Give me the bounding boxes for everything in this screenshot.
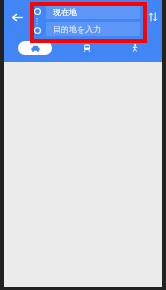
- button[interactable]: Swap origin and destination: [144, 0, 162, 34]
- button[interactable]: 現在地: [46, 5, 140, 19]
- button[interactable]: Driving: [18, 41, 52, 55]
- button[interactable]: Transit: [74, 41, 100, 55]
- button[interactable]: Walking: [122, 41, 148, 55]
- staticText: 目的地を入力: [53, 24, 102, 34]
- staticText: 現在地: [53, 7, 77, 17]
- button[interactable]: Back: [4, 0, 30, 34]
- button[interactable]: 目的地を入力: [46, 22, 140, 36]
